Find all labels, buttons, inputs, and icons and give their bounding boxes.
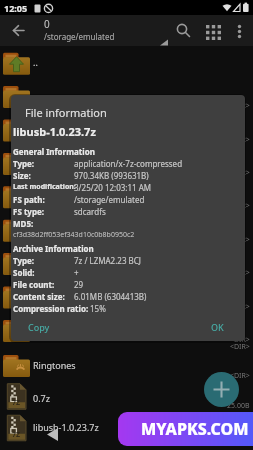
staticText: 25.00B <box>227 401 250 411</box>
staticText: MD5: <box>13 218 34 229</box>
button[interactable] <box>0 382 253 415</box>
button[interactable] <box>0 349 253 382</box>
staticText: 3/25/20 12:03:11 AM <box>74 182 152 193</box>
staticText: Compression ratio: <box>13 303 89 314</box>
staticText: File information <box>25 105 107 120</box>
button[interactable]: Copy <box>16 317 61 337</box>
button[interactable] <box>172 20 194 42</box>
button[interactable] <box>40 16 170 46</box>
staticText: Archive Information <box>13 243 94 254</box>
staticText: Type: <box>13 255 35 266</box>
staticText: Content size: <box>13 291 65 302</box>
staticText: <DIR> <box>230 101 250 111</box>
button[interactable]: MYAPKS.COM <box>118 412 253 446</box>
button[interactable] <box>6 22 32 40</box>
staticText: /storage/emulated <box>74 194 145 205</box>
staticText: OK <box>211 321 224 333</box>
staticText: 6.01MB (6304413B) <box>74 291 147 302</box>
staticText: MYAPKS.COM <box>141 418 249 440</box>
staticText: Copy <box>28 321 50 333</box>
staticText: FS type: <box>13 206 44 217</box>
button[interactable] <box>0 47 253 80</box>
staticText: <DIR> <box>230 342 250 352</box>
staticText: 15% <box>90 303 106 314</box>
staticText: <DIR> <box>230 201 250 211</box>
staticText: cf3d38d2ff053ef343d10c0b8b0950c2 <box>13 230 135 240</box>
staticText: <DIR> <box>230 168 250 178</box>
button[interactable] <box>231 20 249 42</box>
staticText: 0.7z <box>33 392 50 404</box>
staticText: 7Z <box>12 398 21 408</box>
staticText: 0 <box>44 17 50 31</box>
button[interactable] <box>202 20 226 42</box>
staticText: /storage/emulated <box>44 31 115 42</box>
staticText: <DIR> <box>230 235 250 245</box>
staticText: 7Z <box>12 430 21 440</box>
staticText: libusb-1.0.23.7z <box>13 124 96 139</box>
staticText: 7z / LZMA2.23 BCJ <box>74 255 141 266</box>
staticText: <DIR> <box>230 371 250 381</box>
staticText: <DIR> <box>230 135 250 145</box>
staticText: Ringtones <box>33 359 76 371</box>
staticText: 12:05 <box>4 2 28 14</box>
staticText: Size: <box>13 170 31 181</box>
staticText: <DIR> <box>230 302 250 312</box>
staticText: + <box>74 267 79 278</box>
staticText: FS path: <box>13 194 45 205</box>
staticText: .. <box>33 56 38 68</box>
staticText: General Information <box>13 146 95 157</box>
staticText: sdcardfs <box>74 206 106 217</box>
staticText: libusb-1.0.23.7z <box>33 421 99 433</box>
staticText: File count: <box>13 279 55 290</box>
button[interactable]: OK <box>198 317 236 337</box>
staticText: <DIR> <box>230 268 250 278</box>
staticText: Type: <box>13 158 35 169</box>
staticText: 970.34KB (993631B) <box>74 170 149 181</box>
button[interactable] <box>0 415 253 448</box>
staticText: <DIR> <box>230 335 250 345</box>
staticText: Last modification: <box>13 182 76 192</box>
staticText: 29 <box>74 279 84 290</box>
staticText: Solid: <box>13 267 35 278</box>
button[interactable] <box>204 372 239 407</box>
staticText: application/x-7z-compressed <box>74 158 183 169</box>
